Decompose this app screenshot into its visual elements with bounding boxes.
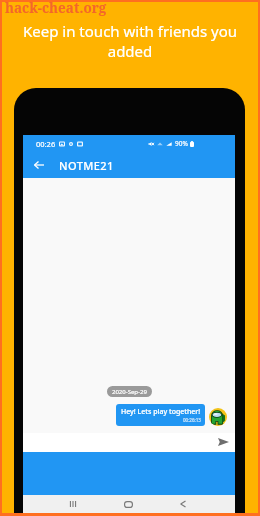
staticText: Keep in touch with friends you added: [12, 21, 248, 61]
staticText: 00:26: [36, 139, 56, 149]
staticText: 90%: [175, 139, 188, 148]
staticText: hack-cheat.org: [5, 0, 107, 17]
button[interactable]: Back: [26, 152, 52, 178]
button[interactable]: Hey! Lets play together!: [116, 404, 205, 426]
staticText: NOTME21: [59, 158, 114, 173]
button[interactable]: Home: [115, 495, 141, 513]
button[interactable]: Recent apps: [60, 495, 86, 513]
button[interactable]: Send: [217, 435, 230, 448]
staticText: Hey! Lets play together!: [121, 407, 201, 417]
button[interactable]: Back: [170, 495, 196, 513]
staticText: 2020-Sep-29: [112, 388, 147, 396]
staticText: 00:26:13: [183, 417, 201, 423]
